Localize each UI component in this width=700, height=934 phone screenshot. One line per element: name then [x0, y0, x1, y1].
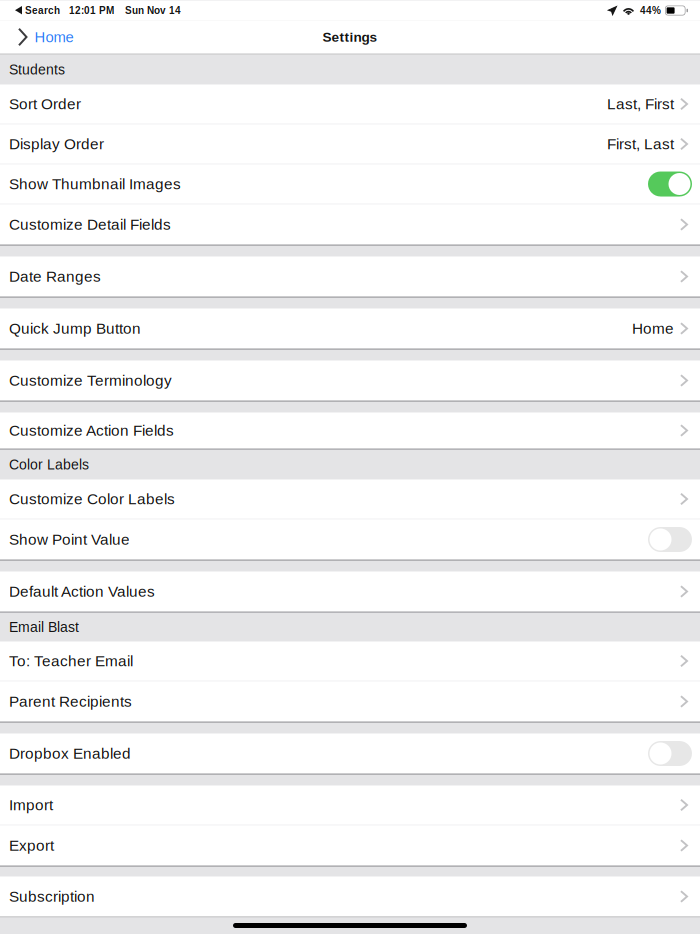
- button[interactable]: Dropbox Enabled: [648, 741, 692, 766]
- staticText: Customize Action Fields: [9, 422, 174, 439]
- staticText: Sun Nov 14: [125, 5, 181, 16]
- staticText: Quick Jump Button: [9, 320, 141, 337]
- staticText: Settings: [322, 29, 377, 45]
- staticText: Import: [9, 796, 53, 814]
- button[interactable]: Date Ranges: [0, 256, 700, 296]
- staticText: Export: [9, 837, 54, 854]
- staticText: Customize Color Labels: [9, 490, 175, 508]
- staticText: Sort Order: [9, 95, 81, 113]
- staticText: Customize Detail Fields: [9, 216, 171, 233]
- staticText: Color Labels: [9, 457, 89, 472]
- staticText: Dropbox Enabled: [9, 745, 131, 762]
- button[interactable]: Home: [0, 20, 82, 53]
- button[interactable]: Customize Terminology: [0, 360, 700, 400]
- button[interactable]: Customize Color Labels: [0, 479, 700, 519]
- staticText: Search: [25, 5, 60, 16]
- staticText: Show Thumbnail Images: [9, 175, 181, 193]
- staticText: Last, First: [607, 95, 674, 113]
- staticText: Subscription: [9, 888, 95, 905]
- staticText: 12:01 PM: [69, 5, 114, 16]
- button[interactable]: Quick Jump Button: [0, 308, 700, 348]
- staticText: Home: [632, 320, 674, 337]
- button[interactable]: Export: [0, 825, 700, 865]
- staticText: Email Blast: [9, 619, 79, 635]
- button[interactable]: Parent Recipients: [0, 681, 700, 721]
- staticText: To: Teacher Email: [9, 652, 133, 670]
- staticText: Show Point Value: [9, 531, 130, 548]
- button[interactable]: Customize Action Fields: [0, 412, 700, 448]
- staticText: Home: [34, 29, 73, 45]
- staticText: Students: [9, 62, 65, 77]
- button[interactable]: Import: [0, 785, 700, 825]
- staticText: 44%: [640, 5, 661, 16]
- staticText: Customize Terminology: [9, 372, 172, 389]
- button[interactable]: Subscription: [0, 876, 700, 916]
- staticText: Default Action Values: [9, 583, 155, 600]
- button[interactable]: Customize Detail Fields: [0, 204, 700, 244]
- button[interactable]: To: Teacher Email: [0, 641, 700, 681]
- staticText: First, Last: [607, 135, 674, 153]
- staticText: Parent Recipients: [9, 693, 132, 710]
- staticText: Display Order: [9, 135, 104, 153]
- button[interactable]: Show Thumbnail Images: [648, 171, 692, 196]
- button[interactable]: Show Point Value: [648, 527, 692, 552]
- staticText: Date Ranges: [9, 268, 101, 285]
- button[interactable]: Display Order: [0, 124, 700, 164]
- button[interactable]: Sort Order: [0, 84, 700, 124]
- button[interactable]: Default Action Values: [0, 571, 700, 611]
